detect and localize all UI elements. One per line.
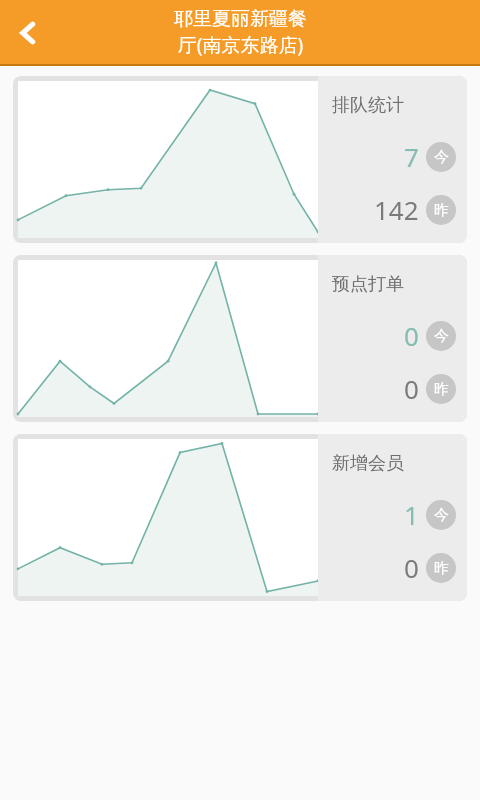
staticText: 预点打单 <box>332 273 404 296</box>
staticText: 142 <box>374 192 419 227</box>
staticText: 昨 <box>434 559 449 578</box>
staticText: 0 <box>404 550 419 585</box>
staticText: 新增会员 <box>332 452 404 475</box>
staticText: 今 <box>434 506 449 525</box>
staticText: 7 <box>404 139 419 174</box>
staticText: 耶里夏丽新疆餐 厅(南京东路店) <box>174 7 307 57</box>
staticText: 昨 <box>434 201 449 220</box>
staticText: 排队统计 <box>332 94 404 117</box>
button[interactable]: Back <box>0 5 56 61</box>
staticText: 1 <box>404 497 419 532</box>
button[interactable]: 预点打单 <box>13 255 467 422</box>
staticText: 0 <box>404 371 419 406</box>
staticText: 今 <box>434 327 449 346</box>
staticText: 0 <box>404 318 419 353</box>
button[interactable]: 排队统计 <box>13 76 467 243</box>
staticText: 今 <box>434 148 449 167</box>
staticText: 昨 <box>434 380 449 399</box>
button[interactable]: 新增会员 <box>13 434 467 601</box>
